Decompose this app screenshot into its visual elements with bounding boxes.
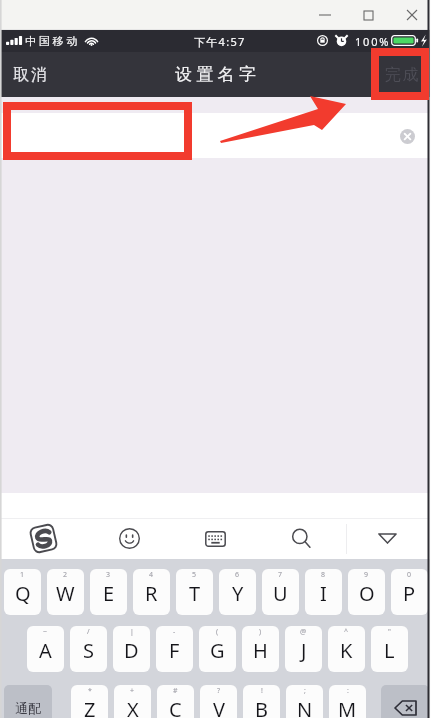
staticText: 8 — [321, 570, 326, 580]
staticText: L — [384, 637, 395, 664]
staticText: M — [338, 696, 357, 718]
staticText: + — [130, 686, 135, 696]
staticText: Q — [15, 580, 31, 607]
staticText: W — [56, 580, 75, 607]
staticText: 7 — [278, 570, 283, 580]
button[interactable]: + — [114, 685, 151, 718]
staticText: F — [169, 637, 180, 664]
staticText: 5 — [192, 570, 197, 580]
staticText: 取消 — [12, 65, 48, 85]
button[interactable]: 1 — [4, 569, 41, 615]
staticText: 1 — [20, 570, 25, 580]
button[interactable]: Close — [390, 0, 431, 30]
staticText: | — [130, 627, 134, 637]
button[interactable]: ! — [243, 685, 280, 718]
staticText: @ — [300, 627, 307, 637]
button[interactable]: 通配 — [4, 685, 52, 718]
button[interactable]: 7 — [262, 569, 299, 615]
button[interactable]: Search — [258, 518, 344, 559]
staticText: S — [83, 637, 94, 664]
button[interactable]: Keyboard — [172, 518, 258, 559]
staticText: Z — [84, 696, 96, 718]
button[interactable]: 完成 — [372, 52, 431, 97]
staticText: 9 — [364, 570, 369, 580]
staticText: ) — [259, 627, 262, 637]
staticText: 6 — [235, 570, 240, 580]
staticText: O — [359, 580, 375, 607]
staticText: A — [39, 637, 52, 664]
staticText: I — [320, 580, 327, 607]
staticText: 完成 — [384, 65, 419, 85]
staticText: ( — [216, 627, 219, 637]
button[interactable]: 4 — [133, 569, 170, 615]
button[interactable]: ) — [242, 626, 279, 672]
staticText: T — [189, 580, 201, 607]
button[interactable]: * — [71, 685, 108, 718]
staticText: 中国移动 — [25, 34, 81, 48]
button[interactable]: Maximize — [346, 0, 390, 30]
button[interactable]: ; — [286, 685, 323, 718]
button[interactable]: 6 — [219, 569, 256, 615]
button[interactable]: 2 — [47, 569, 84, 615]
button[interactable]: Clear text — [0, 113, 431, 158]
button[interactable]: @ — [285, 626, 322, 672]
staticText: N — [297, 696, 313, 718]
staticText: 2 — [63, 570, 68, 580]
staticText: 3 — [106, 570, 111, 580]
button[interactable]: Clear text — [396, 125, 418, 147]
button[interactable]: / — [70, 626, 107, 672]
staticText: / — [87, 627, 90, 637]
staticText: - — [173, 627, 176, 637]
staticText: E — [103, 580, 115, 607]
staticText: H — [253, 637, 268, 664]
button[interactable]: - — [156, 626, 193, 672]
staticText: ~ — [43, 627, 48, 637]
staticText: R — [145, 580, 158, 607]
button[interactable]: Backspace — [381, 685, 429, 718]
button[interactable]: 8 — [305, 569, 342, 615]
staticText: X — [127, 696, 139, 718]
button[interactable]: # — [157, 685, 194, 718]
button[interactable]: ? — [200, 685, 237, 718]
staticText: B — [255, 696, 268, 718]
staticText: D — [124, 637, 139, 664]
staticText: : — [347, 686, 349, 696]
button[interactable]: 0 — [391, 569, 428, 615]
staticText: " — [388, 627, 391, 637]
button[interactable]: ^ — [328, 626, 365, 672]
staticText: 下午4:57 — [194, 34, 246, 49]
staticText: U — [273, 580, 288, 607]
button[interactable]: ~ — [27, 626, 64, 672]
staticText: # — [173, 686, 178, 696]
staticText: Y — [232, 580, 244, 607]
button[interactable]: 9 — [348, 569, 385, 615]
button[interactable]: " — [371, 626, 408, 672]
staticText: G — [210, 637, 225, 664]
staticText: 设置名字 — [175, 64, 261, 85]
button[interactable]: | — [113, 626, 150, 672]
staticText: 100% — [355, 34, 391, 49]
staticText: ; — [304, 686, 306, 696]
button[interactable]: Emoji — [86, 518, 172, 559]
staticText: C — [169, 696, 182, 718]
button[interactable]: ( — [199, 626, 236, 672]
button[interactable]: 取消 — [0, 52, 60, 97]
staticText: J — [301, 637, 307, 664]
button[interactable]: Hide keyboard — [344, 518, 431, 559]
staticText: P — [403, 580, 416, 607]
staticText: K — [340, 637, 353, 664]
staticText: V — [213, 696, 225, 718]
button[interactable]: 3 — [90, 569, 127, 615]
staticText: * — [88, 686, 92, 696]
staticText: ^ — [344, 627, 349, 637]
staticText: 通配 — [15, 700, 41, 716]
button[interactable]: 5 — [176, 569, 213, 615]
button[interactable]: Minimize — [303, 0, 347, 30]
button[interactable]: Sogou input — [0, 518, 86, 559]
button[interactable]: : — [329, 685, 366, 718]
staticText: ! — [261, 686, 263, 696]
staticText: 4 — [149, 570, 154, 580]
staticText: ? — [217, 686, 221, 696]
staticText: 0 — [407, 570, 412, 580]
